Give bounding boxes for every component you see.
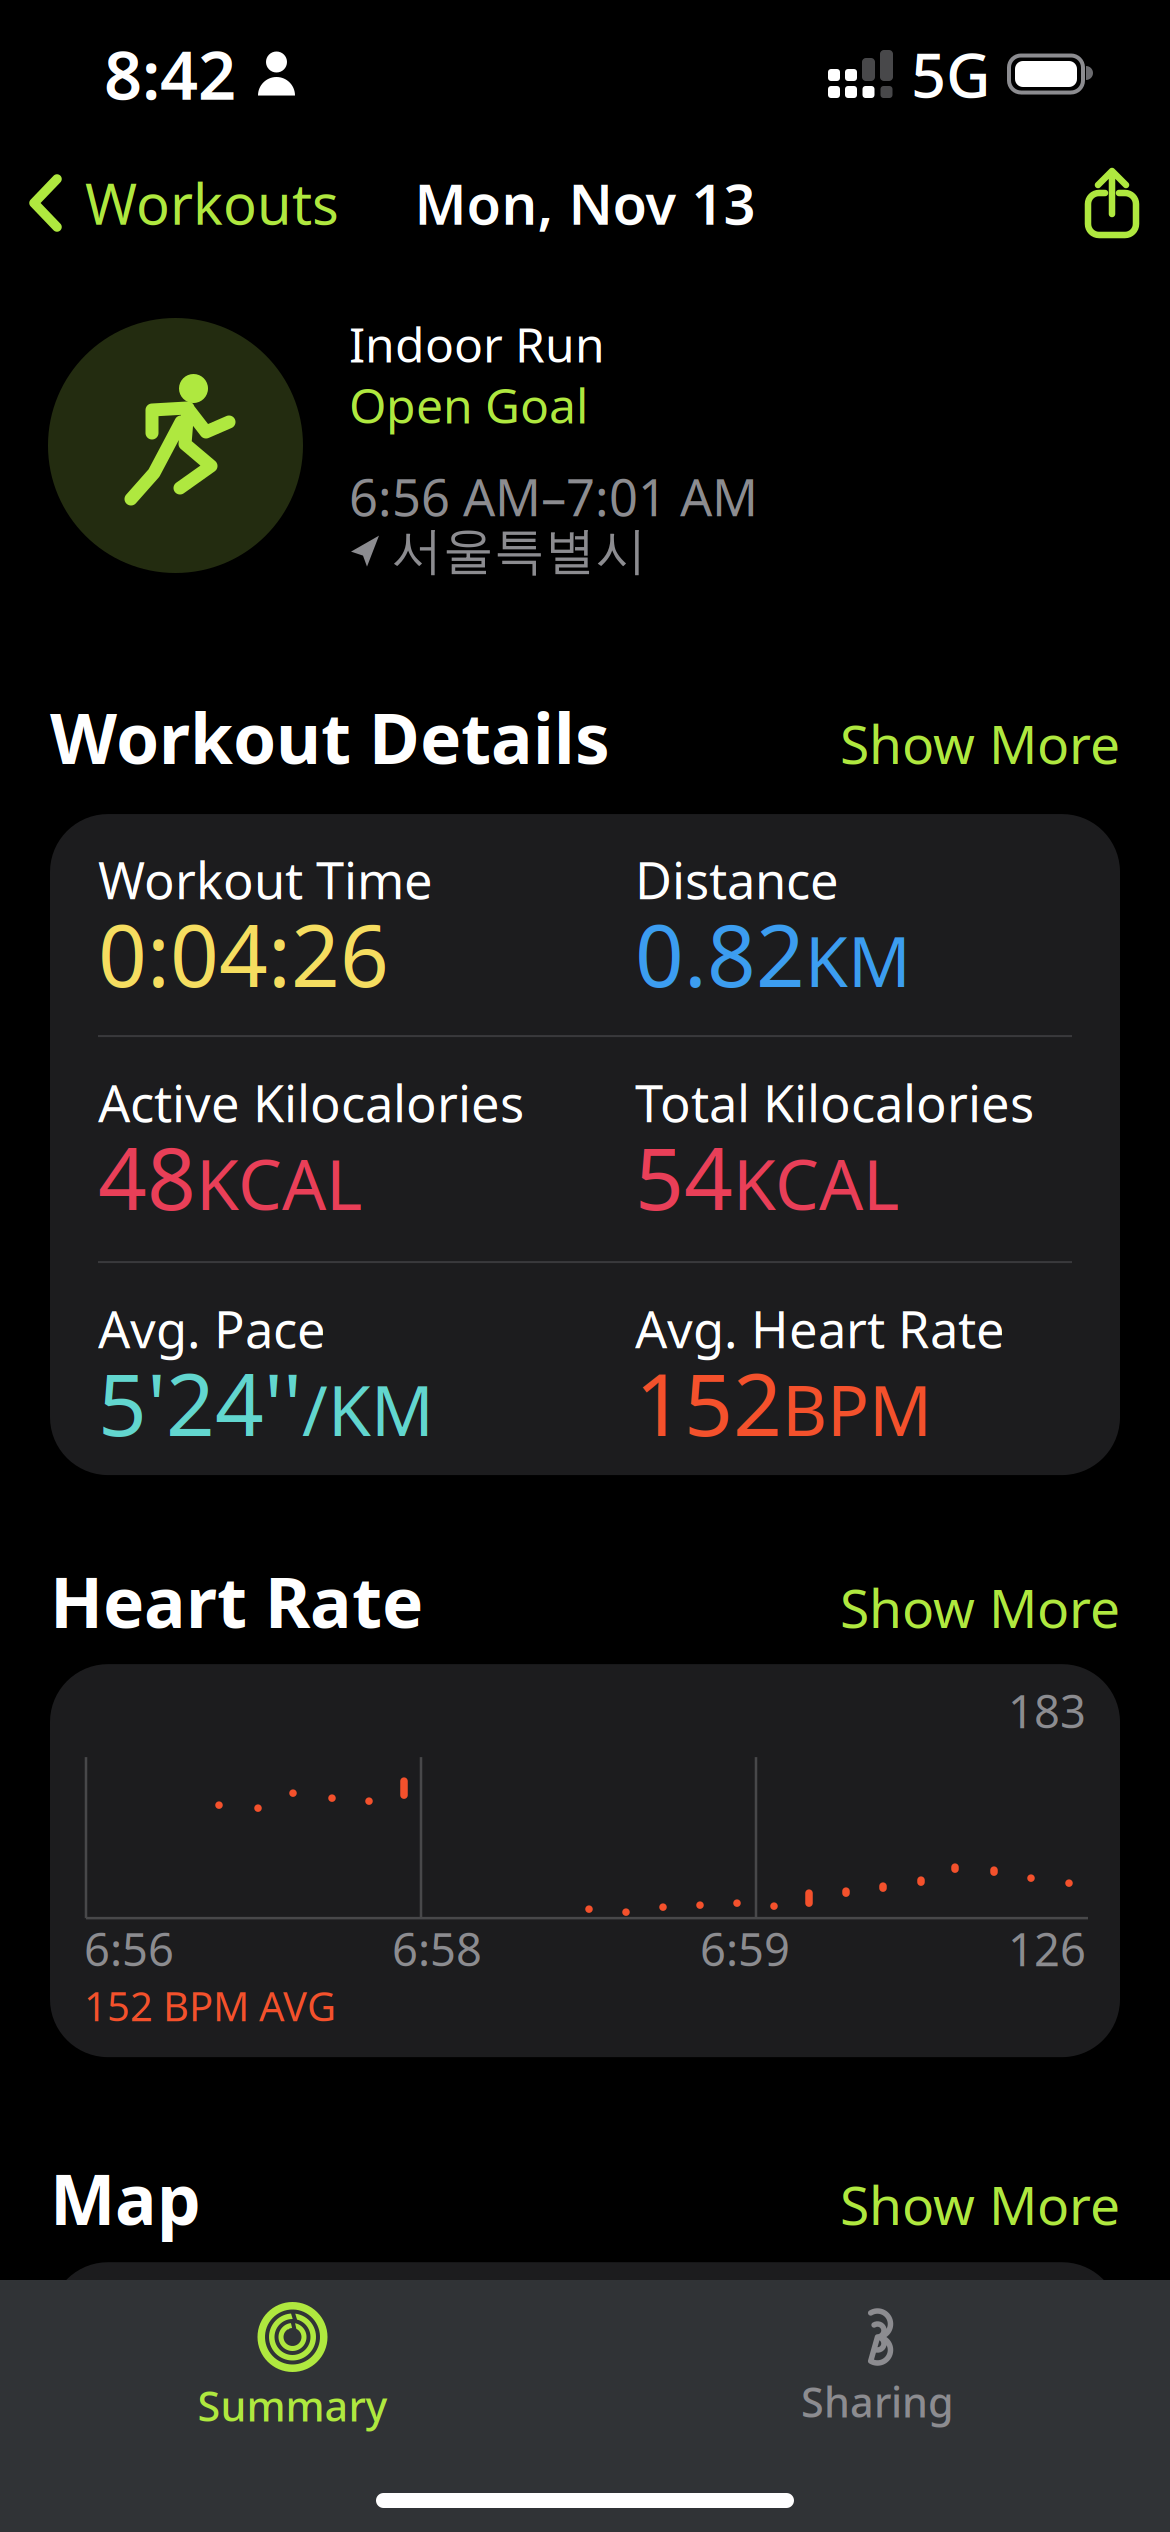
staticText: 6:56 <box>84 1918 174 1979</box>
staticText: 152 BPM AVG <box>84 1979 336 2032</box>
staticText: Active Kilocalories <box>98 1069 524 1136</box>
staticText: 0:04:26 <box>98 897 389 1011</box>
staticText: 5G <box>911 33 991 115</box>
staticText: Summary <box>197 2378 387 2433</box>
staticText: Mon, Nov 13 <box>414 166 755 240</box>
staticText: BPM <box>782 1363 932 1455</box>
button[interactable]: Share <box>1070 159 1154 247</box>
staticText: 54 <box>635 1120 733 1234</box>
staticText: 6:58 <box>392 1918 482 1979</box>
staticText: 8:42 <box>104 30 236 118</box>
staticText: KCAL <box>196 1137 362 1229</box>
staticText: 6:56 AM–7:01 AM <box>349 463 758 530</box>
staticText: 0.82 <box>635 897 805 1011</box>
staticText: KM <box>805 914 911 1006</box>
staticText: 5'24'' <box>98 1346 302 1460</box>
staticText: 6:59 <box>700 1918 790 1979</box>
staticText: Show More <box>840 708 1120 779</box>
staticText: Workouts <box>85 166 339 240</box>
staticText: Show More <box>840 1572 1120 1643</box>
staticText: KCAL <box>733 1137 899 1229</box>
staticText: Indoor Run <box>349 312 605 376</box>
button[interactable]: Show More <box>840 1572 1120 1643</box>
staticText: Workout Details <box>50 691 610 783</box>
button[interactable]: Summary <box>0 2280 585 2433</box>
staticText: 152 <box>635 1346 782 1460</box>
staticText: Total Kilocalories <box>635 1069 1034 1136</box>
button[interactable]: Show More <box>840 708 1120 779</box>
staticText: 서울특별시 <box>392 520 647 582</box>
button[interactable]: Show More <box>840 2169 1120 2240</box>
staticText: Distance <box>635 846 839 913</box>
staticText: 183 <box>1008 1680 1086 1741</box>
button[interactable]: Sharing <box>585 2284 1170 2429</box>
staticText: Avg. Heart Rate <box>635 1295 1005 1362</box>
staticText: Workout Time <box>98 846 433 913</box>
staticText: Show More <box>840 2169 1120 2240</box>
staticText: Map <box>50 2152 201 2244</box>
staticText: /KM <box>302 1363 434 1455</box>
staticText: Open Goal <box>349 373 588 437</box>
staticText: Sharing <box>801 2374 954 2429</box>
staticText: 48 <box>98 1120 196 1234</box>
button[interactable]: Workouts <box>16 154 351 252</box>
staticText: 126 <box>1008 1918 1086 1979</box>
staticText: Avg. Pace <box>98 1295 326 1362</box>
staticText: Heart Rate <box>50 1555 423 1647</box>
